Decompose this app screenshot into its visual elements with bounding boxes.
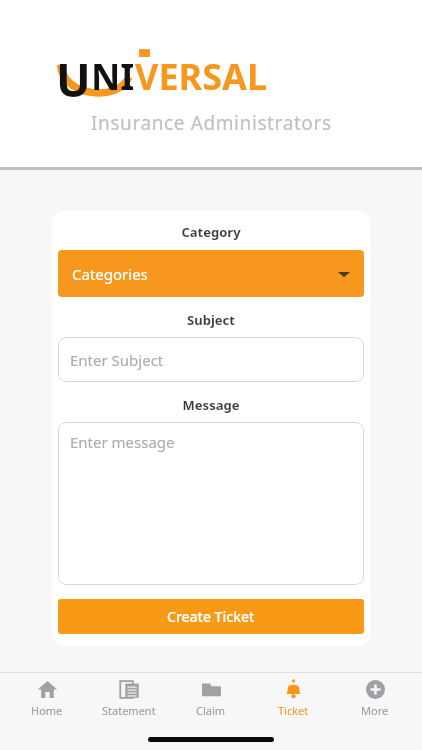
- staticText: Statement: [102, 703, 156, 718]
- staticText: Insurance Administrators: [91, 110, 332, 136]
- button[interactable]: Enter Subject: [58, 337, 364, 382]
- staticText: Enter message: [70, 432, 175, 452]
- staticText: NI: [91, 52, 135, 101]
- button[interactable]: Categories: [58, 250, 364, 297]
- button[interactable]: Create Ticket: [58, 599, 364, 634]
- staticText: Message: [58, 396, 364, 414]
- staticText: Enter Subject: [70, 350, 164, 370]
- button[interactable]: Enter message: [58, 422, 364, 585]
- staticText: Subject: [58, 311, 364, 329]
- button[interactable]: Home: [12, 679, 82, 718]
- staticText: More: [361, 703, 389, 718]
- staticText: U: [56, 48, 91, 104]
- staticText: Home: [31, 703, 63, 718]
- button[interactable]: Statement: [94, 679, 164, 718]
- staticText: Categories: [72, 264, 148, 284]
- staticText: Category: [58, 223, 364, 241]
- staticText: Create Ticket: [167, 607, 255, 626]
- button[interactable]: Claim: [176, 679, 246, 718]
- staticText: Claim: [196, 703, 226, 718]
- button[interactable]: Ticket: [258, 679, 328, 718]
- staticText: VERSAL: [135, 52, 268, 101]
- button[interactable]: More: [340, 679, 410, 718]
- staticText: Ticket: [278, 703, 309, 718]
